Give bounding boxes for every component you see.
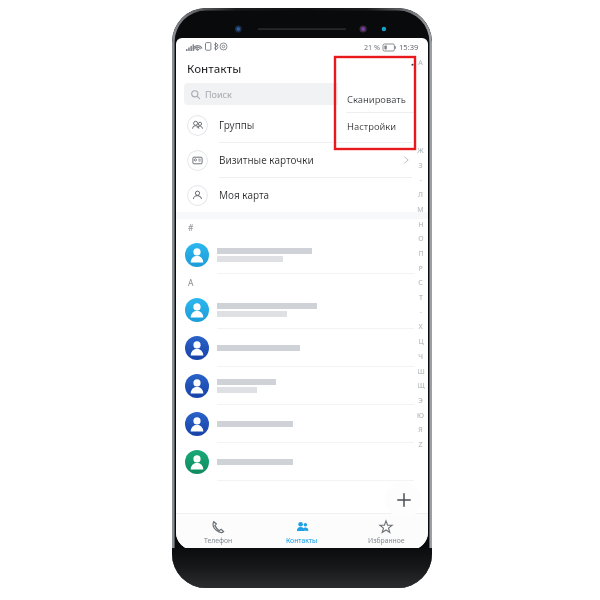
button[interactable]: A (414, 58, 427, 450)
staticText: A (188, 277, 194, 289)
staticText: Z (418, 440, 423, 450)
button[interactable]: Моя карта (176, 178, 428, 212)
staticText: Ж (417, 146, 424, 156)
staticText: Л (418, 190, 423, 200)
staticText: О (418, 234, 424, 244)
button[interactable] (176, 236, 428, 274)
staticText: Поиск (205, 88, 232, 100)
staticText: Ц (418, 337, 424, 347)
staticText: Моя карта (219, 188, 270, 202)
button[interactable]: Визитные карточки (176, 143, 428, 177)
button[interactable]: Add contact (385, 481, 422, 518)
staticText: Щ (417, 381, 425, 391)
button[interactable] (176, 405, 428, 443)
button[interactable] (176, 443, 428, 481)
staticText: Телефон (204, 536, 233, 545)
button[interactable]: Телефон (176, 514, 260, 550)
button[interactable] (176, 329, 428, 367)
button[interactable]: Группы (176, 108, 428, 142)
staticText: Избранное (368, 536, 405, 545)
staticText: Ш (417, 367, 425, 377)
staticText: Х (418, 322, 423, 332)
button[interactable]: Поиск (184, 83, 420, 105)
staticText: Контакты (187, 61, 242, 77)
button[interactable] (176, 291, 428, 329)
staticText: 15:39 (399, 42, 419, 52)
staticText: Сканировать (347, 93, 406, 106)
staticText: Ю (417, 411, 424, 421)
staticText: # (188, 222, 194, 234)
button[interactable]: Избранное (344, 514, 428, 550)
button[interactable]: Сканировать (338, 86, 424, 112)
button[interactable]: Контакты (260, 514, 344, 550)
staticText: З (418, 161, 423, 171)
staticText: Т (419, 293, 423, 303)
staticText: Э (418, 396, 423, 406)
staticText: · (420, 308, 422, 318)
staticText: М (417, 205, 424, 215)
staticText: 21 % (364, 42, 381, 52)
staticText: Н (418, 220, 424, 230)
staticText: A (418, 58, 423, 68)
button[interactable]: Настройки (338, 113, 424, 139)
staticText: Настройки (347, 120, 397, 133)
staticText: Ч (418, 352, 423, 362)
staticText: Р (418, 264, 423, 274)
button[interactable]: More options (400, 57, 424, 81)
staticText: Я (418, 425, 423, 435)
button[interactable] (176, 367, 428, 405)
staticText: Контакты (286, 536, 318, 545)
staticText: Группы (219, 118, 255, 132)
staticText: П (418, 249, 424, 259)
staticText: С (418, 278, 423, 288)
staticText: · (420, 176, 422, 186)
staticText: Визитные карточки (219, 153, 314, 167)
